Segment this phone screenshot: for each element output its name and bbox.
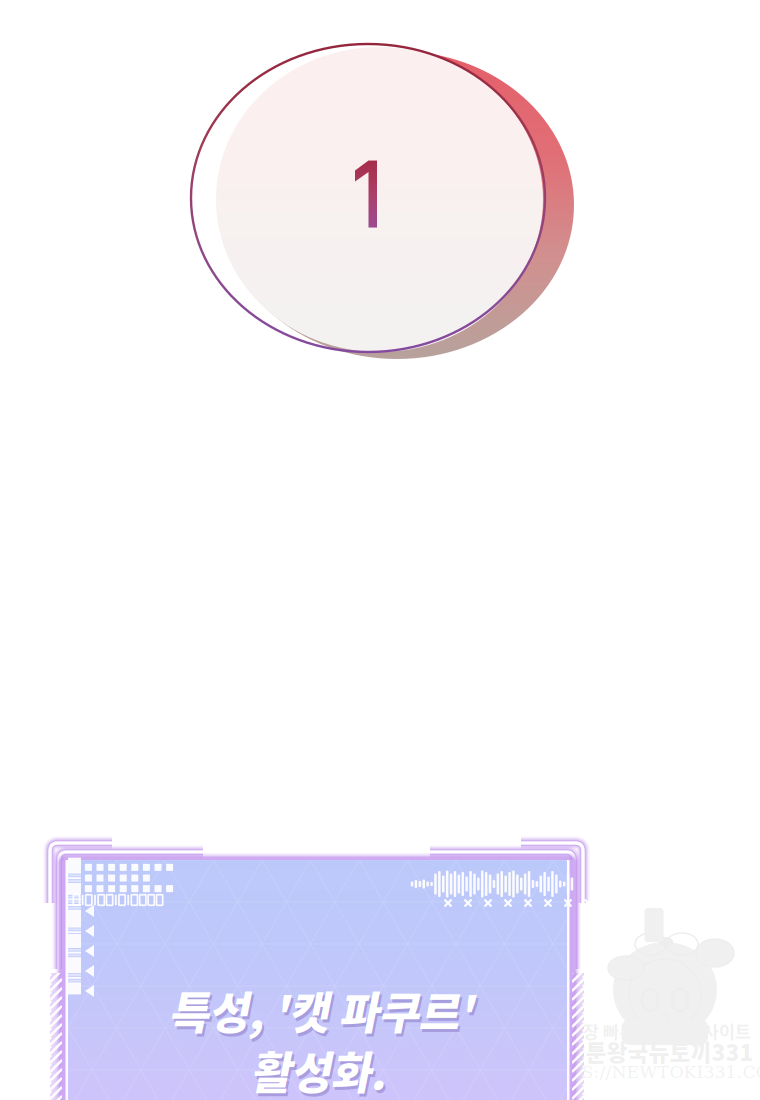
staticText: 활성화. — [262, 1041, 397, 1100]
staticText: 가장 빠른 웹툰제공사이트 — [567, 1018, 751, 1044]
staticText: HTTPS://NEWTOKI331.COM — [530, 1062, 760, 1082]
staticText: 활성화. — [260, 1038, 395, 1100]
staticText: 특성, '캣 파쿠르' — [180, 981, 485, 1045]
staticText: 특성, '캣 파쿠르' — [178, 978, 483, 1042]
staticText: 웹툰왕국뉴토끼331 — [564, 1035, 753, 1067]
